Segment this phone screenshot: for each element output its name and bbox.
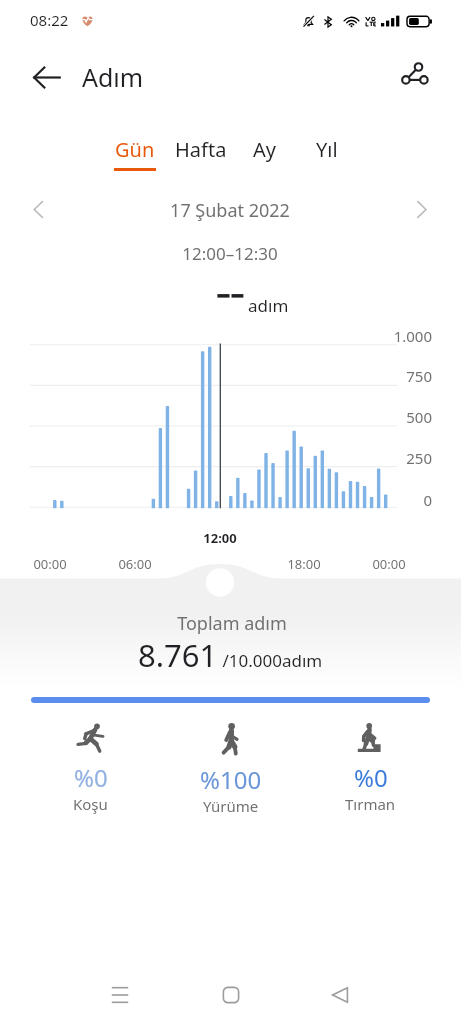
button[interactable]: Previous day xyxy=(22,193,54,225)
staticText: Koşu xyxy=(73,794,108,814)
button[interactable]: Gün xyxy=(101,131,169,177)
staticText: Yürüme xyxy=(203,796,259,816)
staticText: 750 xyxy=(406,366,432,386)
staticText: adım xyxy=(248,294,289,317)
staticText: 00:00 xyxy=(33,555,67,573)
button[interactable]: Recents xyxy=(96,971,144,1019)
staticText: 250 xyxy=(406,448,432,468)
staticText: Yıl xyxy=(316,136,338,163)
button[interactable]: %0 xyxy=(310,721,430,821)
staticText: 08:22 xyxy=(30,10,69,30)
staticText: /10.000adım xyxy=(218,649,323,672)
button[interactable]: %0 xyxy=(30,721,150,821)
staticText: Gün xyxy=(115,136,155,163)
staticText: 500 xyxy=(406,407,432,427)
staticText: %0 xyxy=(354,761,388,794)
staticText: %100 xyxy=(200,763,262,796)
staticText: %0 xyxy=(74,761,108,794)
staticText: 12:00–12:30 xyxy=(182,242,278,265)
staticText: 00:00 xyxy=(372,555,406,573)
staticText: 06:00 xyxy=(118,555,152,573)
staticText: Hafta xyxy=(175,136,227,163)
staticText: Ay xyxy=(253,136,276,163)
button[interactable]: Next day xyxy=(405,193,437,225)
staticText: Tırman xyxy=(345,794,396,814)
staticText: 17 Şubat 2022 xyxy=(170,198,290,223)
button[interactable]: Back xyxy=(22,53,70,101)
staticText: Toplam adım xyxy=(177,611,287,636)
staticText: 8.761 xyxy=(138,634,218,676)
staticText: 1.000 xyxy=(393,326,432,346)
staticText: Adım xyxy=(82,60,144,94)
staticText: 18:00 xyxy=(287,555,321,573)
button[interactable]: Yıl xyxy=(293,131,361,177)
button[interactable]: Ay xyxy=(230,131,298,177)
staticText: 12:00 xyxy=(203,529,237,547)
button[interactable]: Hafta xyxy=(167,131,235,177)
button[interactable]: Share xyxy=(391,53,437,99)
staticText: 0 xyxy=(423,490,432,510)
button[interactable]: %100 xyxy=(171,721,291,821)
button[interactable]: Home xyxy=(207,971,255,1019)
button[interactable]: Back xyxy=(316,971,364,1019)
